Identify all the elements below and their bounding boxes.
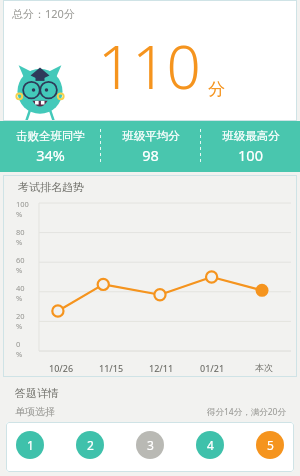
staticText: 110 (98, 25, 201, 107)
button[interactable]: 击败全班同学 (0, 121, 100, 172)
staticText: 12/11 (149, 362, 174, 374)
staticText: 11/15 (99, 362, 124, 374)
button[interactable]: 班级最高分 (201, 121, 300, 172)
staticText: 1 (27, 437, 34, 453)
staticText: 34% (36, 145, 65, 165)
staticText: 80 (16, 227, 25, 237)
staticText: 分 (208, 79, 225, 100)
staticText: 60 (16, 255, 25, 265)
staticText: 单项选择 (15, 405, 55, 418)
button[interactable]: 3 (136, 431, 164, 459)
staticText: 班级最高分 (222, 129, 280, 143)
button[interactable]: 1 (16, 431, 44, 459)
staticText: 01/21 (200, 362, 225, 374)
staticText: % (16, 209, 23, 219)
staticText: % (16, 349, 23, 359)
staticText: 10/26 (49, 362, 74, 374)
staticText: 20 (16, 311, 25, 321)
staticText: 得分14分，满分20分 (207, 406, 286, 418)
staticText: 班级平均分 (122, 129, 180, 143)
staticText: % (16, 237, 23, 247)
staticText: % (16, 265, 23, 275)
button[interactable]: 5 (256, 431, 284, 459)
staticText: 本次 (255, 362, 273, 373)
button[interactable]: 班级平均分 (101, 121, 200, 172)
staticText: 2 (87, 437, 94, 453)
staticText: % (16, 293, 23, 303)
staticText: 答题详情 (15, 386, 59, 400)
staticText: 5 (267, 437, 274, 453)
button[interactable]: 4 (196, 431, 224, 459)
staticText: 98 (142, 145, 159, 165)
staticText: 40 (16, 283, 25, 293)
staticText: 考试排名趋势 (18, 180, 84, 194)
staticText: 3 (147, 437, 154, 453)
staticText: 击败全班同学 (16, 129, 85, 143)
button[interactable]: 考试排名趋势图 (3, 197, 297, 377)
staticText: 100 (238, 145, 263, 165)
staticText: % (16, 321, 23, 331)
staticText: 100 (16, 199, 29, 209)
staticText: 4 (207, 437, 214, 453)
staticText: 总分：120分 (12, 6, 75, 21)
staticText: 0 (16, 339, 21, 349)
button[interactable]: 2 (76, 431, 104, 459)
